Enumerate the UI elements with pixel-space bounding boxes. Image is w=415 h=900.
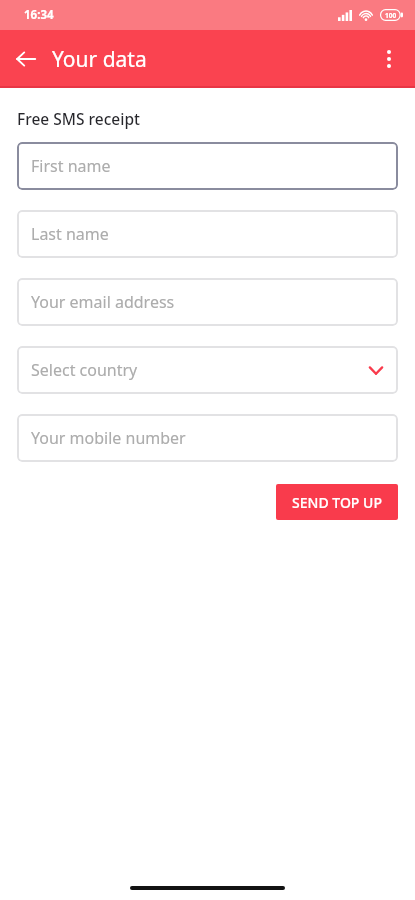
button[interactable]: First name: [17, 142, 398, 190]
staticText: Your mobile number: [31, 427, 186, 449]
button[interactable]: Back: [6, 39, 46, 79]
staticText: Your data: [52, 45, 147, 74]
button[interactable]: Your email address: [17, 278, 398, 326]
staticText: Your email address: [31, 291, 175, 313]
button[interactable]: Select country: [17, 346, 398, 394]
staticText: Last name: [31, 223, 109, 245]
staticText: 100: [385, 11, 397, 20]
staticText: Free SMS receipt: [17, 108, 140, 129]
staticText: First name: [31, 155, 111, 177]
button[interactable]: SEND TOP UP: [276, 484, 398, 520]
staticText: 16:34: [24, 7, 54, 23]
staticText: SEND TOP UP: [292, 493, 382, 512]
button[interactable]: Your mobile number: [17, 414, 398, 462]
staticText: Select country: [31, 359, 138, 381]
button[interactable]: More options: [369, 39, 409, 79]
button[interactable]: Last name: [17, 210, 398, 258]
